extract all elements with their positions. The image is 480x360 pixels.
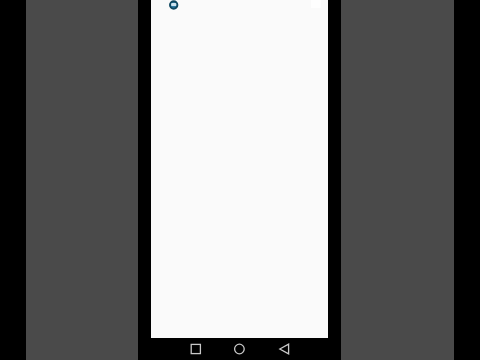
button[interactable] [184,339,207,360]
button[interactable] [228,339,251,360]
button[interactable] [273,339,296,360]
